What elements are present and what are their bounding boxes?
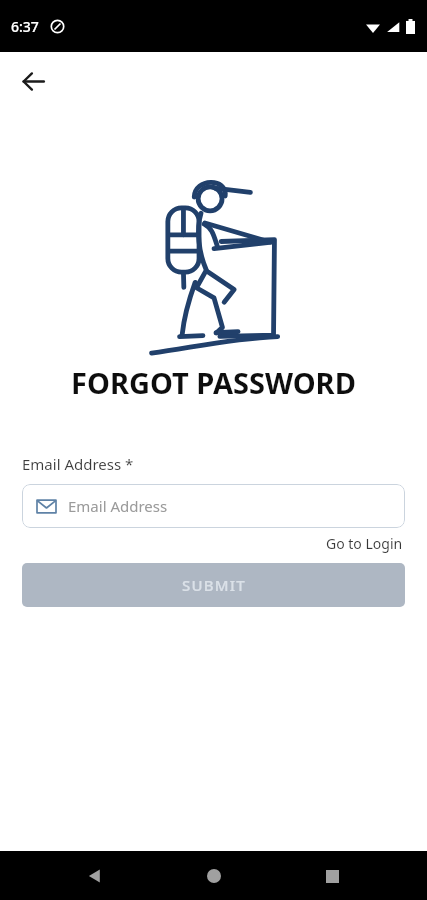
button[interactable]: SUBMIT <box>22 563 405 607</box>
button[interactable]: Go to Login <box>324 532 405 555</box>
staticText: 6:37 <box>11 17 39 36</box>
staticText: FORGOT PASSWORD <box>0 363 427 402</box>
staticText: Email Address * <box>22 454 134 474</box>
button[interactable]: Recent apps <box>309 853 355 899</box>
button[interactable]: Email Address <box>22 484 405 528</box>
staticText: SUBMIT <box>182 575 246 595</box>
button[interactable]: Home <box>191 853 237 899</box>
staticText: Email Address <box>68 496 168 516</box>
button[interactable]: Back <box>72 853 118 899</box>
button[interactable]: Back <box>11 59 55 103</box>
